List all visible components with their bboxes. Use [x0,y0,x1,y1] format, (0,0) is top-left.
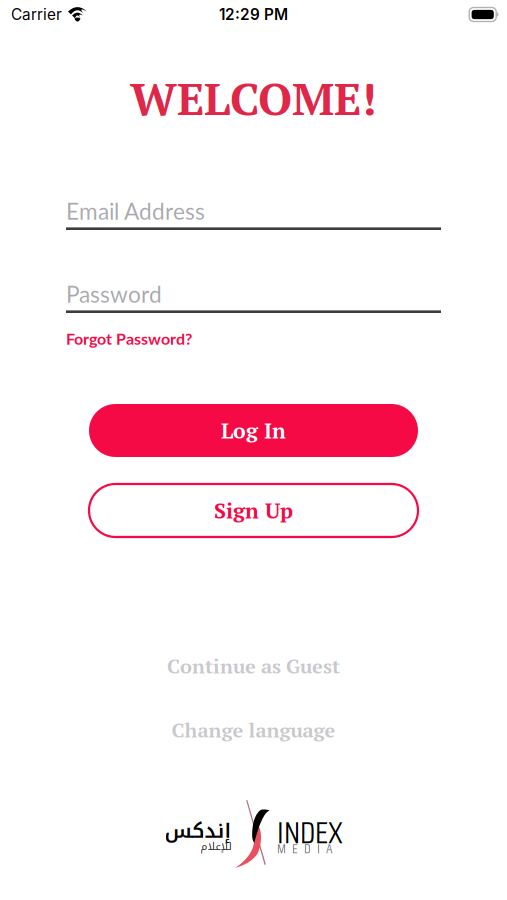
staticText: Password [66,280,162,308]
staticText: Carrier [11,5,62,24]
staticText: INDEX [277,808,343,857]
button[interactable]: Sign Up [89,484,418,537]
staticText: M E D I A [277,838,333,859]
staticText: WELCOME! [130,68,377,128]
staticText: للإعلام [200,836,231,857]
button[interactable]: Forgot Password? [66,313,441,347]
staticText: Email Address [66,197,205,225]
button[interactable]: Continue as Guest [167,655,340,677]
staticText: 12:29 PM [219,5,288,24]
button[interactable]: Log In [89,404,418,457]
staticText: Forgot Password? [66,329,192,348]
staticText: Log In [221,416,286,445]
staticText: Sign Up [214,496,293,525]
button[interactable]: Change language [171,719,335,741]
staticText: Continue as Guest [167,653,340,679]
staticText: Change language [171,717,335,743]
staticText: إندكس [164,812,231,850]
